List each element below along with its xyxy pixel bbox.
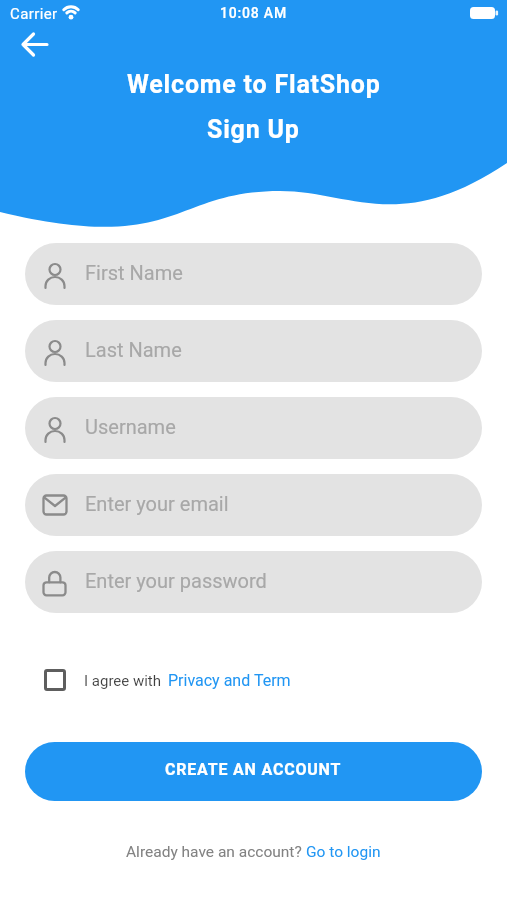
- button[interactable]: [12, 30, 56, 60]
- staticText: Carrier: [10, 5, 58, 23]
- staticText: Enter your password: [85, 569, 267, 592]
- staticText: Already have an account?: [126, 843, 306, 861]
- button[interactable]: Go to login: [306, 843, 381, 861]
- staticText: I agree with: [84, 672, 162, 690]
- staticText: First Name: [85, 261, 183, 284]
- button[interactable]: First Name: [25, 243, 482, 305]
- staticText: Sign Up: [207, 115, 300, 144]
- staticText: Username: [85, 415, 176, 438]
- staticText: Welcome to FlatShop: [127, 70, 381, 99]
- button[interactable]: Username: [25, 397, 482, 459]
- staticText: Enter your email: [85, 492, 229, 515]
- button[interactable]: Enter your password: [25, 551, 482, 613]
- button[interactable]: [44, 669, 66, 691]
- button[interactable]: Enter your email: [25, 474, 482, 536]
- staticText: CREATE AN ACCOUNT: [165, 760, 342, 779]
- button[interactable]: CREATE AN ACCOUNT: [25, 742, 482, 801]
- button[interactable]: Privacy and Term: [168, 671, 291, 690]
- button[interactable]: Last Name: [25, 320, 482, 382]
- staticText: 10:08 AM: [220, 5, 288, 21]
- staticText: Last Name: [85, 338, 182, 361]
